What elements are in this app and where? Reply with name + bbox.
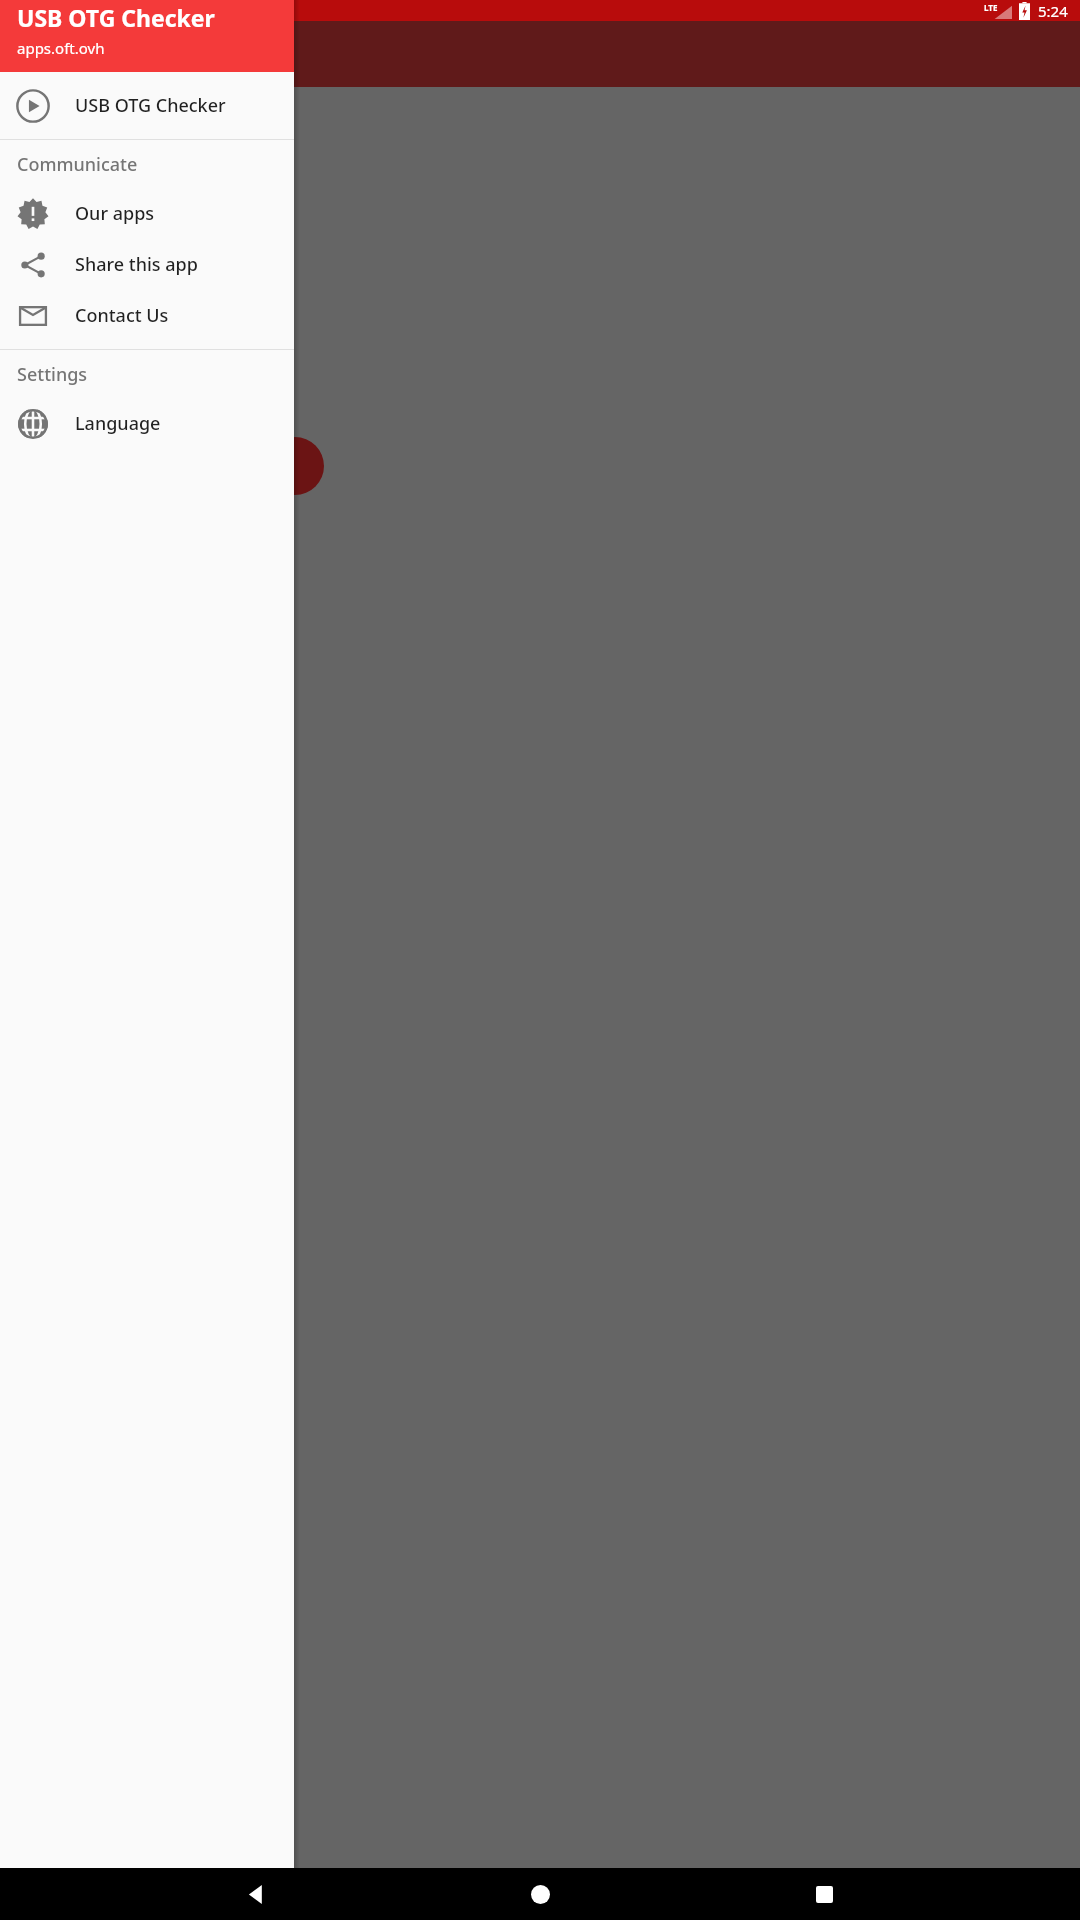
staticText: Our apps <box>75 201 155 226</box>
staticText: LTE <box>984 2 998 13</box>
staticText: Language <box>75 411 161 436</box>
button[interactable]: Back <box>228 1868 284 1920</box>
staticText: apps.oft.ovh <box>17 38 105 58</box>
button[interactable]: Our apps <box>0 188 294 239</box>
staticText: Communicate <box>17 152 138 177</box>
staticText: USB OTG Checker <box>17 2 215 33</box>
button[interactable]: Share this app <box>0 239 294 290</box>
button[interactable]: Recent apps <box>796 1868 852 1920</box>
button[interactable]: USB OTG Checker <box>0 80 294 131</box>
staticText: USB OTG Checker <box>75 93 226 118</box>
button[interactable]: Contact Us <box>0 290 294 341</box>
staticText: Settings <box>17 362 88 387</box>
button[interactable]: Refresh <box>266 437 324 495</box>
button[interactable]: Language <box>0 398 294 449</box>
staticText: 5:24 <box>1038 1 1068 21</box>
staticText: Share this app <box>75 252 198 277</box>
button[interactable]: Home <box>512 1868 568 1920</box>
staticText: Contact Us <box>75 303 169 328</box>
button[interactable]: USB OTG Checker <box>0 0 294 72</box>
